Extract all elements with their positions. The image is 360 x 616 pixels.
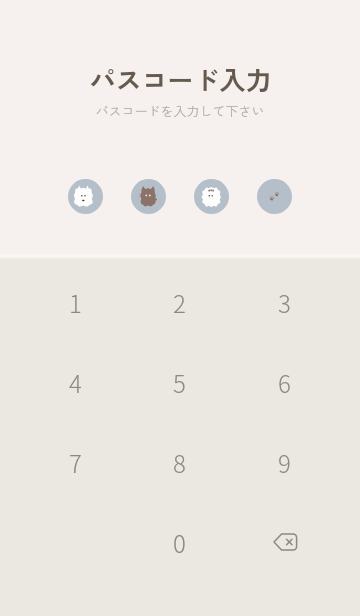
staticText: 3 — [278, 285, 291, 320]
button[interactable] — [257, 179, 292, 214]
staticText: パスコードを入力して下さい — [95, 101, 265, 120]
staticText: 2 — [173, 285, 186, 320]
staticText: 9 — [278, 445, 291, 480]
staticText: 5 — [173, 365, 186, 400]
button[interactable] — [131, 179, 166, 214]
staticText: 0 — [173, 525, 186, 560]
staticText: 8 — [173, 445, 186, 480]
button[interactable]: 5 — [127, 342, 232, 422]
button[interactable]: 0 — [127, 502, 232, 582]
button[interactable] — [194, 179, 229, 214]
button[interactable]: Delete — [232, 502, 337, 582]
staticText: 6 — [278, 365, 291, 400]
staticText: 1 — [69, 285, 82, 320]
staticText: 4 — [69, 365, 82, 400]
button[interactable] — [68, 179, 103, 214]
button[interactable]: 8 — [127, 422, 232, 502]
button[interactable]: 4 — [23, 342, 127, 422]
button[interactable]: 6 — [232, 342, 337, 422]
staticText: 7 — [69, 445, 82, 480]
button[interactable]: 1 — [23, 262, 127, 342]
button[interactable]: 3 — [232, 262, 337, 342]
button[interactable]: 7 — [23, 422, 127, 502]
other: Delete — [270, 527, 300, 557]
button[interactable]: 2 — [127, 262, 232, 342]
staticText: パスコード入力 — [89, 60, 272, 98]
button[interactable]: 9 — [232, 422, 337, 502]
